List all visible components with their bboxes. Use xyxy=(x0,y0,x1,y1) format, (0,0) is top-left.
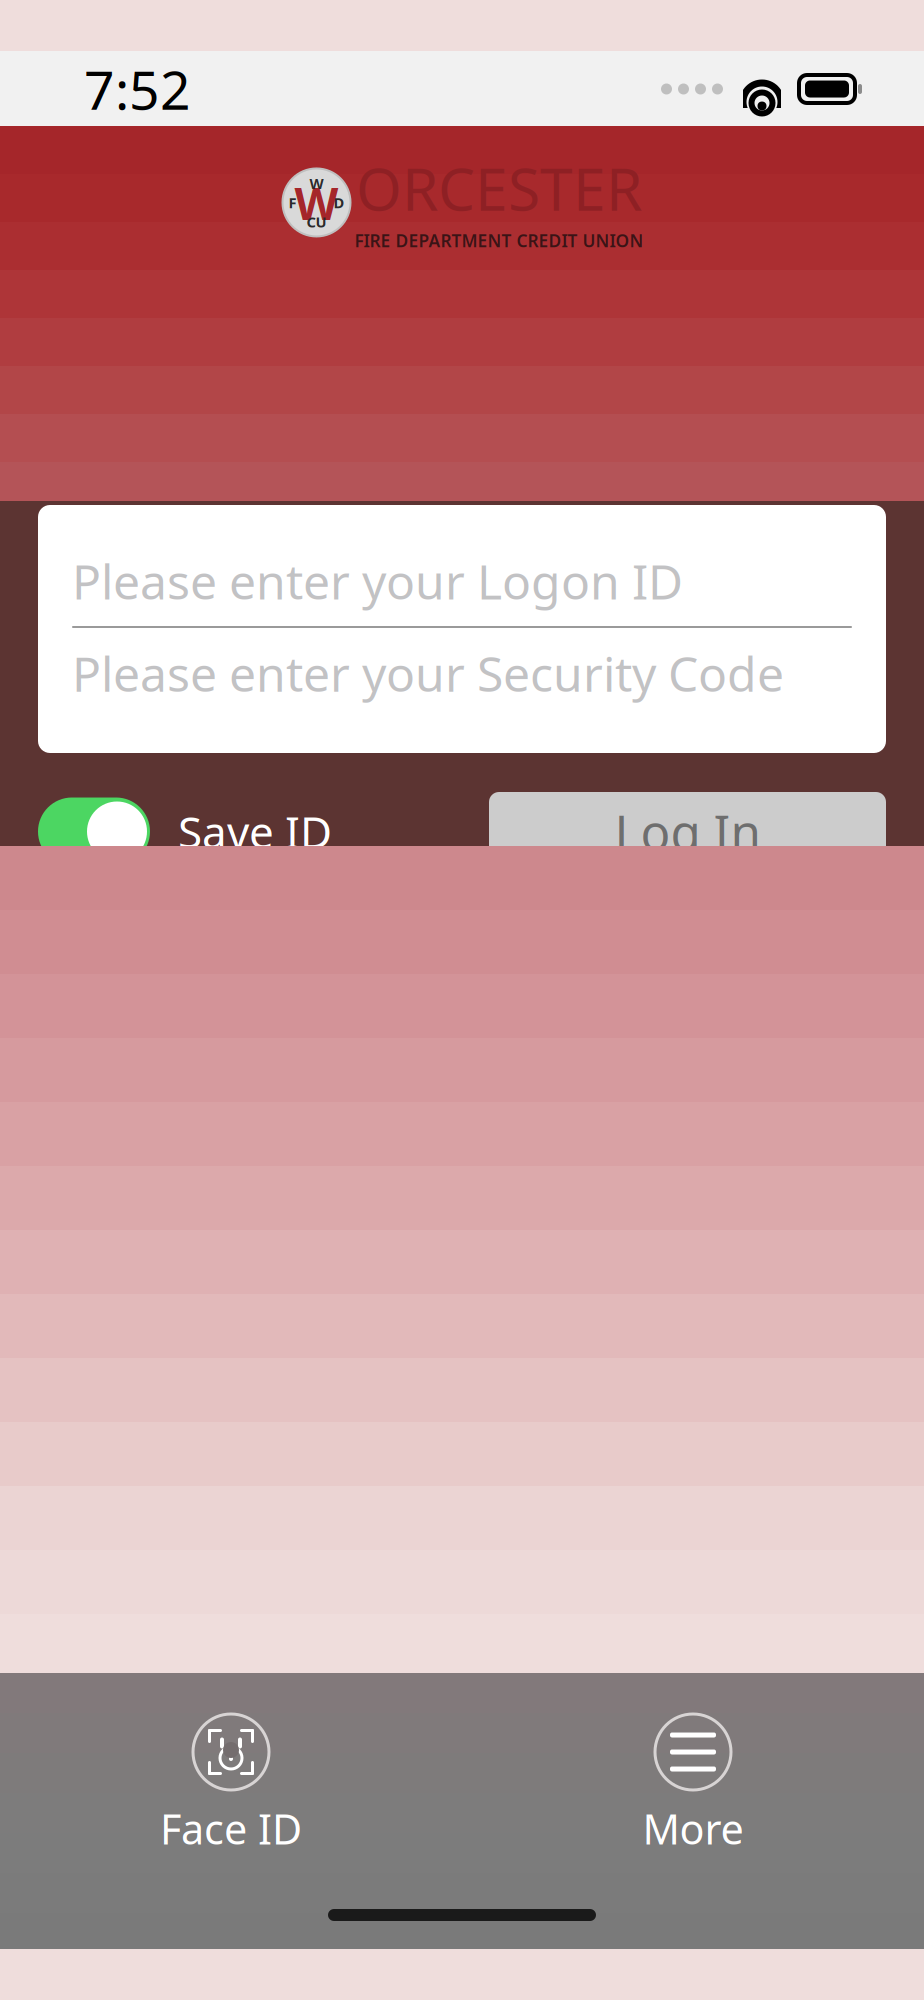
staticText: W xyxy=(294,172,338,233)
button[interactable]: Face ID xyxy=(131,1713,331,1856)
staticText: D xyxy=(333,193,344,212)
button[interactable]: Save ID xyxy=(38,797,332,865)
staticText: More xyxy=(642,1801,743,1856)
staticText: Save ID xyxy=(178,802,332,861)
staticText: Please enter your Logon ID xyxy=(72,549,683,613)
staticText: Log In xyxy=(614,799,760,864)
staticText: Please enter your Security Code xyxy=(72,641,784,705)
staticText: Face ID xyxy=(160,1801,302,1856)
staticText: W xyxy=(309,173,323,193)
staticText: CU xyxy=(306,212,326,231)
staticText: ORCESTER xyxy=(356,149,642,227)
button[interactable]: More xyxy=(593,1713,793,1856)
staticText: FIRE DEPARTMENT CREDIT UNION xyxy=(354,229,643,252)
staticText: 7:52 xyxy=(84,54,191,124)
staticText: F xyxy=(288,193,296,212)
button[interactable]: Log In xyxy=(489,792,886,871)
